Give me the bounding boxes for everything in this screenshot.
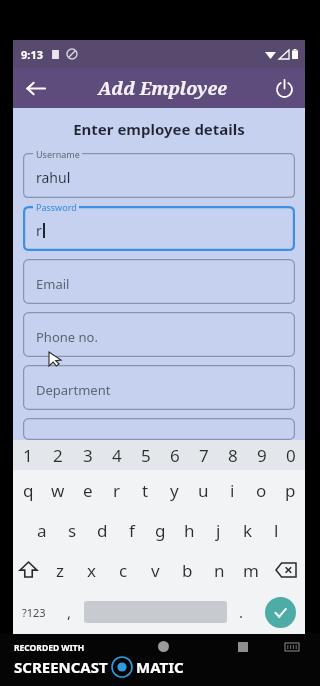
button[interactable]: ?123	[13, 590, 55, 634]
staticText: 2	[53, 444, 63, 467]
button[interactable]: n	[203, 550, 235, 590]
staticText: 9:13	[21, 47, 43, 62]
button[interactable]: o	[247, 470, 276, 510]
staticText: j	[216, 519, 221, 542]
staticText: 0	[286, 444, 296, 467]
button[interactable]: m	[235, 550, 267, 590]
staticText: f	[129, 519, 135, 542]
button[interactable]: f	[117, 510, 146, 550]
staticText: v	[151, 559, 160, 582]
staticText: Phone no.	[36, 328, 98, 346]
staticText: Add Employee	[98, 76, 227, 101]
staticText: i	[230, 479, 235, 502]
staticText: b	[182, 559, 193, 582]
staticText: MATIC	[136, 657, 184, 677]
staticText: .	[239, 602, 244, 622]
button[interactable]: Password	[23, 206, 295, 251]
staticText: a	[37, 519, 47, 542]
staticText: SCREENCAST	[14, 657, 108, 677]
staticText: m	[243, 559, 259, 582]
staticText: ?123	[22, 605, 46, 620]
button[interactable]: 9	[247, 440, 276, 470]
staticText: r	[36, 221, 42, 240]
staticText: h	[184, 519, 195, 542]
button[interactable]: 5	[131, 440, 160, 470]
button[interactable]: Shift	[13, 550, 44, 590]
staticText: e	[83, 479, 93, 502]
button[interactable]: Phone no.	[23, 312, 295, 357]
button[interactable]: .	[227, 590, 256, 634]
button[interactable]: k	[233, 510, 262, 550]
staticText: t	[142, 479, 149, 502]
staticText: 3	[83, 444, 93, 467]
staticText: u	[198, 479, 209, 502]
staticText: 6	[170, 444, 180, 467]
button[interactable]: Email	[23, 259, 295, 304]
button[interactable]	[23, 418, 295, 440]
button[interactable]: 7	[189, 440, 218, 470]
staticText: d	[97, 519, 108, 542]
button[interactable]: u	[189, 470, 218, 510]
staticText: q	[23, 479, 34, 502]
button[interactable]: v	[139, 550, 171, 590]
staticText: y	[170, 479, 179, 502]
button[interactable]: Enter	[256, 590, 305, 634]
staticText: k	[243, 519, 253, 542]
staticText: w	[51, 479, 65, 502]
staticText: RECORDED WITH	[14, 642, 85, 654]
button[interactable]: x	[75, 550, 107, 590]
staticText: 9	[257, 444, 267, 467]
button[interactable]: ,	[55, 590, 84, 634]
button[interactable]: 3	[73, 440, 102, 470]
staticText: n	[214, 559, 225, 582]
staticText: g	[155, 519, 166, 542]
button[interactable]: h	[175, 510, 204, 550]
button[interactable]: 8	[218, 440, 247, 470]
staticText: Password	[36, 201, 77, 213]
button[interactable]: q	[13, 470, 43, 510]
staticText: 4	[112, 444, 122, 467]
button[interactable]: Logout	[267, 71, 301, 105]
staticText: c	[119, 559, 128, 582]
button[interactable]: 4	[102, 440, 131, 470]
button[interactable]: t	[131, 470, 160, 510]
staticText: 7	[199, 444, 209, 467]
button[interactable]: p	[276, 470, 305, 510]
button[interactable]: b	[171, 550, 203, 590]
button[interactable]: c	[107, 550, 139, 590]
staticText: Username	[36, 148, 80, 160]
button[interactable]: w	[43, 470, 73, 510]
button[interactable]: z	[44, 550, 75, 590]
button[interactable]: 2	[43, 440, 73, 470]
button[interactable]: l	[262, 510, 291, 550]
staticText: 8	[228, 444, 238, 467]
staticText: z	[56, 559, 64, 582]
button[interactable]: Backspace	[267, 550, 305, 590]
staticText: p	[285, 479, 296, 502]
button[interactable]: 1	[13, 440, 43, 470]
button[interactable]: g	[146, 510, 175, 550]
button[interactable]: y	[160, 470, 189, 510]
button[interactable]: i	[218, 470, 247, 510]
staticText: rahul	[36, 168, 71, 187]
button[interactable]: 6	[160, 440, 189, 470]
button[interactable]: a	[27, 510, 57, 550]
staticText: o	[256, 479, 267, 502]
button[interactable]: Back	[17, 70, 53, 106]
button[interactable]: Username	[23, 153, 295, 198]
staticText: Enter employee details	[13, 119, 305, 139]
button[interactable]: j	[204, 510, 233, 550]
staticText: r	[113, 479, 121, 502]
button[interactable]: e	[73, 470, 102, 510]
staticText: l	[274, 519, 279, 542]
staticText: 1	[23, 444, 33, 467]
button[interactable]: r	[102, 470, 131, 510]
button[interactable]: 0	[276, 440, 305, 470]
staticText: s	[68, 519, 77, 542]
staticText: ,	[67, 602, 72, 622]
button[interactable]: s	[57, 510, 87, 550]
staticText: x	[87, 559, 96, 582]
button[interactable]: d	[87, 510, 117, 550]
button[interactable]: Department	[23, 365, 295, 410]
